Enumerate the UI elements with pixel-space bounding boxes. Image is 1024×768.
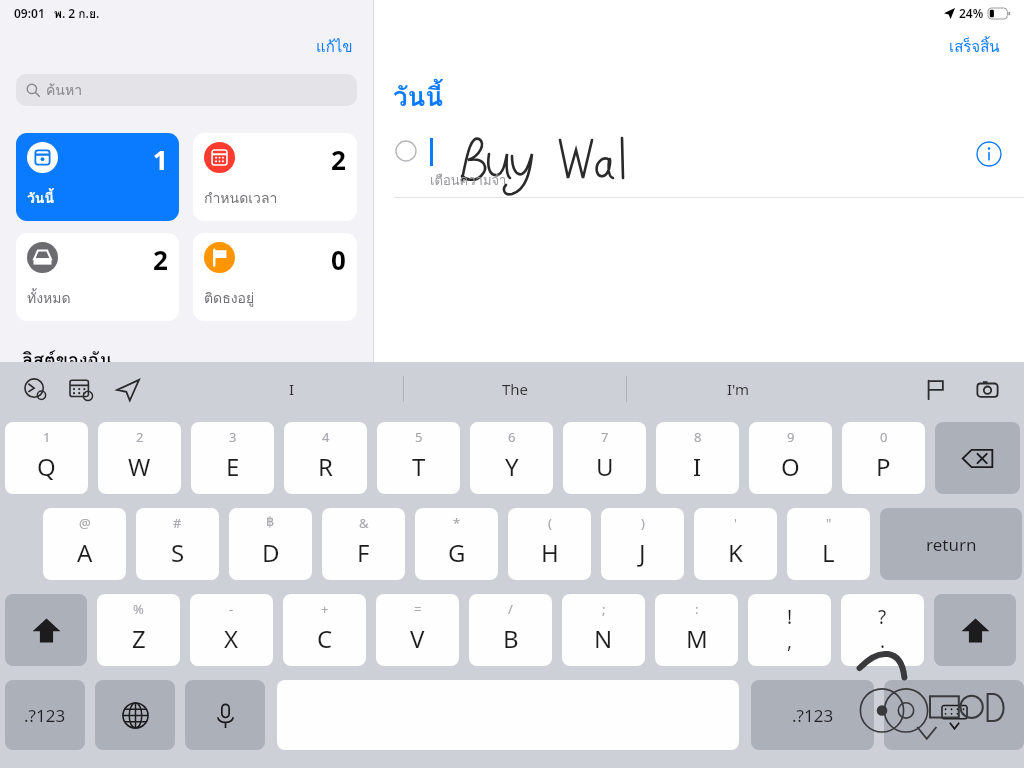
button[interactable]: 5 <box>377 422 460 494</box>
staticText: 24% <box>959 5 984 21</box>
staticText: * <box>453 514 461 532</box>
button[interactable]: Language <box>95 680 175 750</box>
button[interactable]: Schedule <box>66 374 96 404</box>
staticText: B <box>503 622 519 655</box>
button[interactable]: # <box>136 508 219 580</box>
staticText: ; <box>602 600 606 618</box>
button[interactable]: 6 <box>470 422 553 494</box>
staticText: 4 <box>322 428 330 446</box>
button[interactable]: return <box>880 508 1022 580</box>
staticText: ? <box>878 604 887 630</box>
staticText: . <box>880 628 886 654</box>
button[interactable]: เตือนความจำ <box>374 126 1024 198</box>
button[interactable]: 2 <box>16 233 179 321</box>
button[interactable]: : <box>655 594 738 666</box>
button[interactable]: 0 <box>193 233 357 321</box>
staticText: .?123 <box>24 704 66 727</box>
staticText: ) <box>641 514 645 532</box>
button[interactable]: .?123 <box>751 680 874 750</box>
button[interactable]: 4 <box>284 422 367 494</box>
button[interactable]: ) <box>601 508 684 580</box>
button[interactable]: ! <box>748 594 831 666</box>
staticText: I <box>289 379 295 399</box>
staticText: C <box>317 622 333 655</box>
button[interactable]: Flag <box>920 374 950 404</box>
button[interactable]: Undo <box>20 374 50 404</box>
button[interactable]: I'm <box>627 362 850 416</box>
button[interactable]: " <box>787 508 870 580</box>
button[interactable]: & <box>322 508 405 580</box>
button[interactable]: ( <box>508 508 591 580</box>
button[interactable]: Hide keyboard <box>884 680 1024 750</box>
staticText: # <box>173 514 182 532</box>
button[interactable]: ? <box>841 594 924 666</box>
button[interactable]: ; <box>562 594 645 666</box>
button[interactable]: เสร็จสิ้น <box>945 33 1004 61</box>
button[interactable]: 1 <box>5 422 88 494</box>
staticText: วันนี้ <box>27 187 55 209</box>
staticText: 1 <box>153 142 168 177</box>
button[interactable]: ' <box>694 508 777 580</box>
staticText: return <box>926 533 977 556</box>
button[interactable]: ค้นหา <box>16 74 357 106</box>
button[interactable]: 8 <box>656 422 739 494</box>
staticText: X <box>224 622 239 655</box>
button[interactable]: Shift <box>934 594 1016 666</box>
button[interactable]: แก้ไข <box>312 33 357 61</box>
staticText: 3 <box>229 428 237 446</box>
staticText: 0 <box>331 242 346 277</box>
staticText: 8 <box>694 428 702 446</box>
staticText: " <box>826 514 832 532</box>
button[interactable]: % <box>97 594 180 666</box>
button[interactable]: 2 <box>193 133 357 221</box>
staticText: R <box>318 450 333 483</box>
button[interactable]: + <box>283 594 366 666</box>
button[interactable]: Location <box>112 374 142 404</box>
staticText: 09:01 <box>14 5 45 21</box>
button[interactable]: Delete <box>935 422 1020 494</box>
button[interactable]: @ <box>43 508 126 580</box>
button[interactable]: Dictate <box>185 680 265 750</box>
staticText: ' <box>734 514 737 532</box>
staticText: ลิสต์ของฉัน <box>22 345 113 374</box>
button[interactable]: Shift <box>5 594 87 666</box>
button[interactable]: ฿ <box>229 508 312 580</box>
button[interactable]: 1 <box>16 133 179 221</box>
staticText: W <box>128 450 151 483</box>
staticText: เตือนความจำ <box>430 170 507 191</box>
button[interactable]: 2 <box>98 422 181 494</box>
button[interactable]: I <box>180 362 404 416</box>
button[interactable]: 0 <box>842 422 925 494</box>
button[interactable]: .?123 <box>5 680 85 750</box>
staticText: I'm <box>727 379 750 399</box>
button[interactable]: 9 <box>749 422 832 494</box>
staticText: M <box>686 622 708 655</box>
staticText: - <box>229 600 234 618</box>
button[interactable]: * <box>415 508 498 580</box>
staticText: G <box>448 536 466 569</box>
staticText: The <box>502 379 529 399</box>
staticText: 2 <box>136 428 144 446</box>
staticText: ฿ <box>266 514 275 529</box>
staticText: .?123 <box>792 704 834 727</box>
button[interactable]: Details <box>976 141 1002 167</box>
staticText: H <box>541 536 559 569</box>
button[interactable]: / <box>469 594 552 666</box>
staticText: D <box>262 536 280 569</box>
staticText: 0 <box>880 428 888 446</box>
staticText: ! <box>787 604 793 630</box>
button[interactable]: The <box>404 362 627 416</box>
staticText: 7 <box>601 428 609 446</box>
button[interactable]: Camera <box>972 374 1002 404</box>
staticText: 9 <box>787 428 795 446</box>
button[interactable]: 7 <box>563 422 646 494</box>
button[interactable]: - <box>190 594 273 666</box>
button[interactable]: 3 <box>191 422 274 494</box>
staticText: + <box>321 600 329 618</box>
staticText: : <box>695 600 699 618</box>
staticText: ติดธงอยู่ <box>204 287 255 309</box>
staticText: = <box>414 600 422 618</box>
button[interactable]: = <box>376 594 459 666</box>
staticText: พ. 2 ก.ย. <box>54 4 100 23</box>
